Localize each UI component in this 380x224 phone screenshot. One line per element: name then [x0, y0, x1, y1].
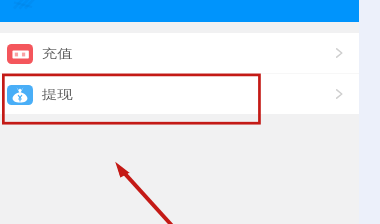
staticText: 充值 [42, 46, 72, 62]
staticText: 提现 [42, 87, 72, 103]
button[interactable]: 充值 [0, 33, 359, 73]
button[interactable]: More [330, 43, 350, 63]
button[interactable]: 提现 [0, 74, 359, 114]
button[interactable]: More [330, 84, 350, 104]
